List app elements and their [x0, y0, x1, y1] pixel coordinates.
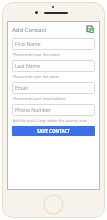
staticText: Add Contact [12, 26, 47, 34]
staticText: Last Name [15, 63, 41, 70]
button[interactable]: Last Name [12, 60, 95, 72]
staticText: Add the plus (+) sign before the country… [13, 118, 87, 123]
staticText: First Name [15, 41, 41, 48]
button[interactable]: Phone Number [12, 104, 95, 116]
button[interactable]: Email [12, 82, 95, 94]
staticText: SAVE CONTACT [37, 128, 70, 134]
staticText: Please enter your email address [13, 96, 66, 101]
staticText: Phone Number [15, 107, 51, 114]
button[interactable]: Contacts [86, 25, 95, 34]
staticText: Please enter your first name [13, 52, 60, 57]
button[interactable]: SAVE CONTACT [12, 126, 95, 136]
staticText: Please enter your last name [13, 74, 59, 79]
button[interactable]: First Name [12, 38, 95, 50]
staticText: Email [15, 85, 28, 92]
